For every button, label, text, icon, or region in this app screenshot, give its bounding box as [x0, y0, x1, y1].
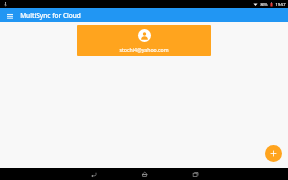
button[interactable]: Recent apps	[187, 168, 203, 180]
staticText: MultiSync for Cloud	[20, 11, 81, 20]
button[interactable]: Back	[85, 168, 101, 180]
button[interactable]: Add account	[265, 145, 282, 162]
staticText: stochi4@yahoo.com	[119, 46, 169, 53]
button[interactable]: Open navigation drawer	[4, 10, 15, 21]
button[interactable]: stochi4@yahoo.com	[77, 25, 211, 56]
button[interactable]: Home	[136, 168, 152, 180]
staticText: 86%	[260, 2, 268, 7]
staticText: 19:57	[275, 2, 286, 7]
